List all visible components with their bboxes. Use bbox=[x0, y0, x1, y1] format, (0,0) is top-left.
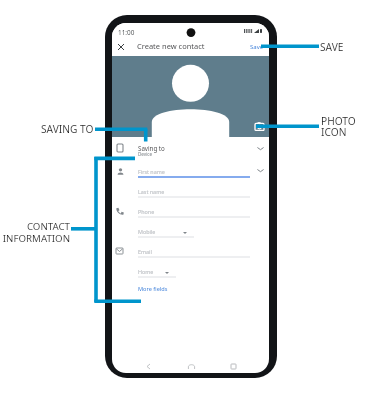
staticText: Save bbox=[250, 43, 264, 51]
button[interactable]: Save bbox=[247, 43, 269, 51]
button[interactable]: First name bbox=[112, 162, 269, 182]
button[interactable]: Add photo bbox=[254, 121, 264, 131]
button[interactable]: Mobile bbox=[112, 222, 269, 242]
button[interactable]: Saving to bbox=[112, 137, 269, 158]
button[interactable]: More fields bbox=[136, 283, 170, 295]
button[interactable]: Email bbox=[112, 242, 269, 262]
button[interactable]: Last name bbox=[112, 182, 269, 202]
staticText: Saving to bbox=[138, 144, 165, 152]
staticText: SAVING TO bbox=[41, 122, 94, 136]
button[interactable]: Back bbox=[141, 359, 155, 373]
staticText: Mobile bbox=[138, 228, 156, 235]
staticText: Phone bbox=[138, 208, 155, 215]
staticText: Device bbox=[138, 151, 153, 157]
button[interactable]: Recent apps bbox=[226, 359, 240, 373]
staticText: First name bbox=[138, 168, 165, 175]
staticText: SAVE bbox=[320, 40, 344, 54]
staticText: PHOTO ICON bbox=[321, 114, 356, 139]
button[interactable]: Close bbox=[115, 41, 127, 53]
button[interactable]: Phone bbox=[112, 202, 269, 222]
staticText: Home bbox=[138, 268, 154, 275]
staticText: More fields bbox=[138, 285, 168, 293]
staticText: 11:00 bbox=[118, 28, 135, 37]
staticText: CONTACT INFORMATION bbox=[0, 220, 70, 245]
button[interactable]: Home bbox=[184, 359, 198, 373]
staticText: Create new contact bbox=[137, 41, 205, 51]
button[interactable]: Home bbox=[112, 262, 269, 282]
staticText: Email bbox=[138, 248, 152, 255]
staticText: Last name bbox=[138, 188, 165, 195]
